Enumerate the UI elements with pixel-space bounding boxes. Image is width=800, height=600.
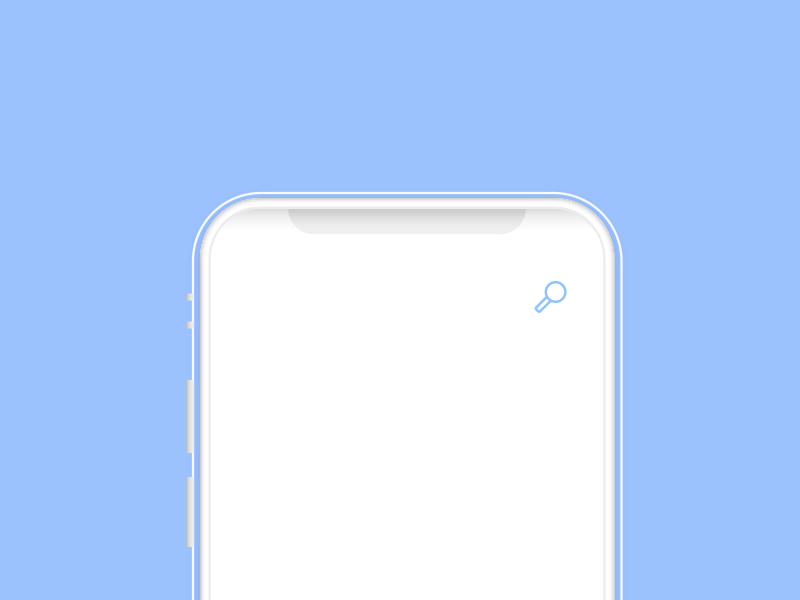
button[interactable]: Search bbox=[534, 270, 578, 314]
